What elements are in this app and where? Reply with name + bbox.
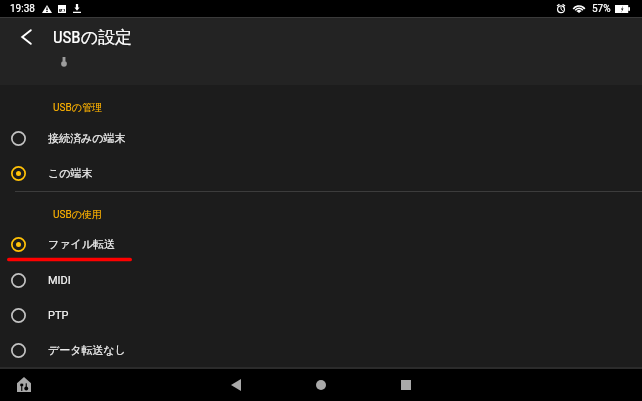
staticText: 接続済みの端末 — [48, 131, 126, 145]
staticText: 19:38 — [10, 3, 35, 15]
staticText: データ転送なし — [48, 343, 127, 357]
button[interactable]: データ転送なし — [0, 333, 642, 367]
staticText: PTP — [48, 309, 69, 322]
button[interactable]: Back — [222, 371, 250, 399]
button[interactable]: Home — [307, 371, 335, 399]
staticText: この端末 — [48, 166, 93, 180]
staticText: 57% — [592, 3, 611, 15]
button[interactable]: Recent apps — [392, 371, 420, 399]
button[interactable]: Back — [10, 21, 42, 53]
staticText: USBの設定 — [53, 27, 133, 48]
staticText: ファイル転送 — [48, 237, 116, 251]
staticText: MIDI — [48, 274, 71, 287]
button[interactable]: PTP — [0, 298, 642, 332]
staticText: USBの使用 — [53, 208, 102, 221]
button[interactable]: ファイル転送 — [0, 227, 642, 261]
button[interactable]: 接続済みの端末 — [0, 121, 642, 155]
button[interactable]: この端末 — [0, 156, 642, 190]
staticText: USBの管理 — [53, 101, 102, 114]
button[interactable]: MIDI — [0, 263, 642, 297]
button[interactable]: Home — [11, 371, 37, 397]
